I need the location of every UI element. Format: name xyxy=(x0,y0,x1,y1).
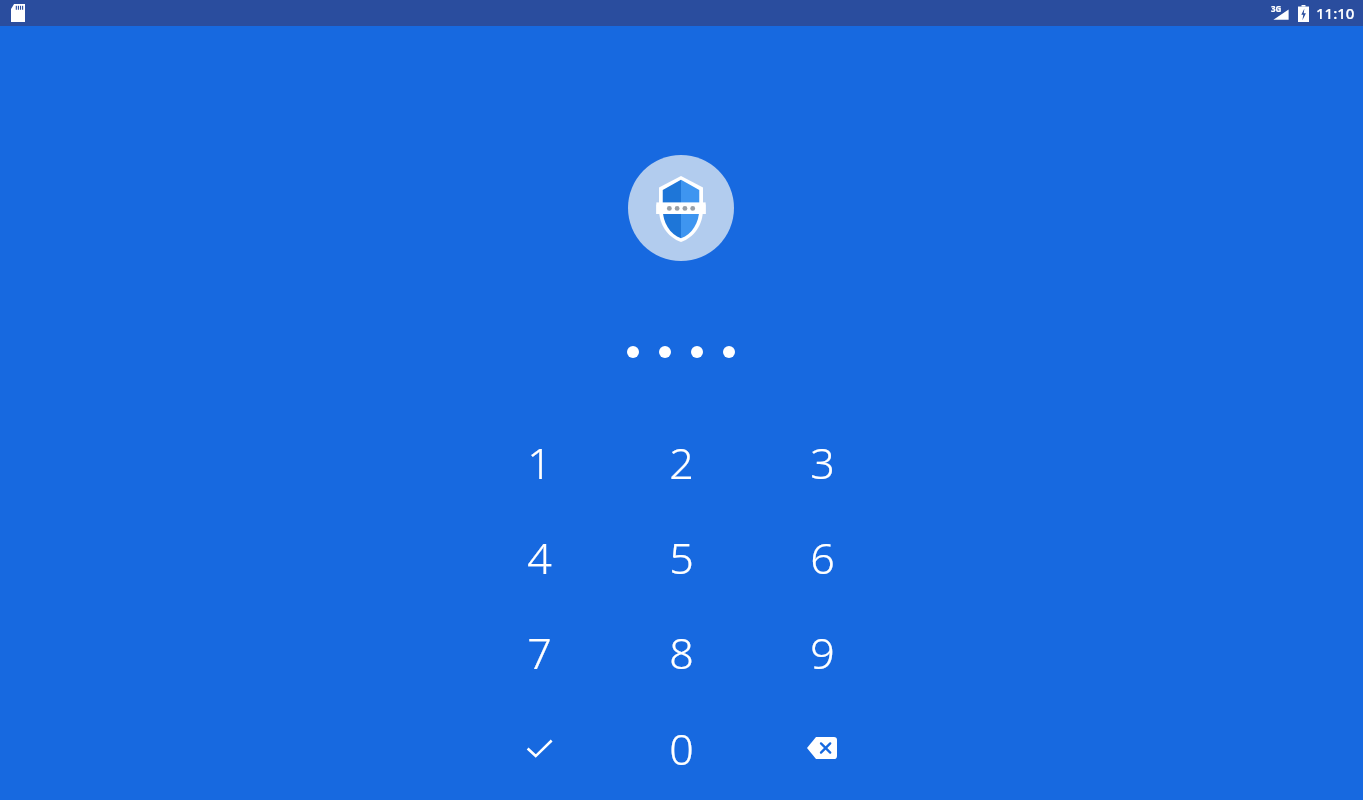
staticText: 3 xyxy=(810,433,835,492)
staticText: 6 xyxy=(810,528,835,587)
staticText: 8 xyxy=(669,623,694,682)
staticText: 3G xyxy=(1271,3,1282,14)
button[interactable]: 7 xyxy=(479,606,599,698)
button[interactable]: Backspace xyxy=(762,702,882,794)
button[interactable]: 4 xyxy=(479,511,599,603)
button[interactable]: 5 xyxy=(621,511,741,603)
button[interactable]: 3 xyxy=(762,416,882,508)
staticText: 11:10 xyxy=(1316,3,1355,23)
button[interactable]: 1 xyxy=(479,416,599,508)
staticText: 2 xyxy=(669,433,694,492)
staticText: 0 xyxy=(669,719,694,778)
button[interactable]: 2 xyxy=(621,416,741,508)
staticText: 1 xyxy=(527,433,552,492)
staticText: 4 xyxy=(527,528,552,587)
button[interactable]: 6 xyxy=(762,511,882,603)
button[interactable]: 9 xyxy=(762,606,882,698)
button[interactable]: 8 xyxy=(621,606,741,698)
staticText: 7 xyxy=(527,623,552,682)
staticText: 9 xyxy=(810,623,835,682)
staticText: 5 xyxy=(669,528,694,587)
button[interactable]: Confirm xyxy=(479,702,599,794)
button[interactable]: 0 xyxy=(621,702,741,794)
